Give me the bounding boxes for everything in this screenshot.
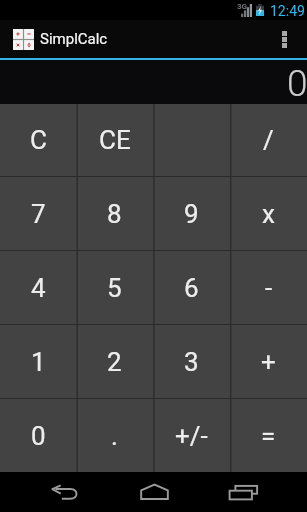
staticText: - bbox=[265, 273, 273, 303]
staticText: / bbox=[263, 125, 274, 155]
button[interactable]: Recent apps bbox=[217, 472, 270, 512]
staticText: 0 bbox=[287, 62, 307, 105]
button[interactable]: 7 bbox=[0, 177, 76, 250]
button[interactable]: - bbox=[230, 251, 307, 324]
button[interactable]: 0 bbox=[0, 399, 76, 472]
staticText: C bbox=[30, 125, 47, 155]
button[interactable]: / bbox=[230, 104, 307, 176]
staticText: SimplCalc bbox=[40, 30, 108, 48]
button[interactable]: 5 bbox=[76, 251, 153, 324]
button[interactable]: + bbox=[230, 325, 307, 398]
button[interactable]: Back bbox=[38, 472, 91, 512]
staticText: = bbox=[261, 421, 276, 451]
staticText: 4 bbox=[31, 273, 46, 303]
staticText: +/- bbox=[175, 421, 208, 451]
button[interactable]: 3 bbox=[153, 325, 230, 398]
button[interactable]: 8 bbox=[76, 177, 153, 250]
staticText: 8 bbox=[107, 199, 122, 229]
button[interactable]: More options bbox=[275, 20, 307, 58]
button[interactable]: 9 bbox=[153, 177, 230, 250]
button[interactable]: C bbox=[0, 104, 76, 176]
button[interactable]: 1 bbox=[0, 325, 76, 398]
staticText: 0 bbox=[31, 421, 46, 451]
button[interactable]: 2 bbox=[76, 325, 153, 398]
staticText: 2 bbox=[107, 347, 122, 377]
button[interactable]: x bbox=[230, 177, 307, 250]
button[interactable]: . bbox=[76, 399, 153, 472]
staticText: x bbox=[262, 199, 275, 229]
staticText: 12:49 bbox=[270, 3, 305, 19]
staticText: 3G bbox=[237, 2, 248, 11]
staticText: 6 bbox=[184, 273, 199, 303]
button[interactable]: CE bbox=[76, 104, 153, 176]
button[interactable]: 4 bbox=[0, 251, 76, 324]
staticText: CE bbox=[99, 125, 131, 155]
staticText: 1 bbox=[31, 347, 46, 377]
button[interactable]: = bbox=[230, 399, 307, 472]
staticText: + bbox=[261, 347, 276, 377]
staticText: . bbox=[111, 421, 118, 451]
button[interactable]: +/- bbox=[153, 399, 230, 472]
staticText: 9 bbox=[184, 199, 199, 229]
button[interactable]: 6 bbox=[153, 251, 230, 324]
button[interactable]: Home bbox=[128, 472, 181, 512]
staticText: 7 bbox=[31, 199, 46, 229]
staticText: 5 bbox=[107, 273, 122, 303]
staticText: 3 bbox=[184, 347, 199, 377]
